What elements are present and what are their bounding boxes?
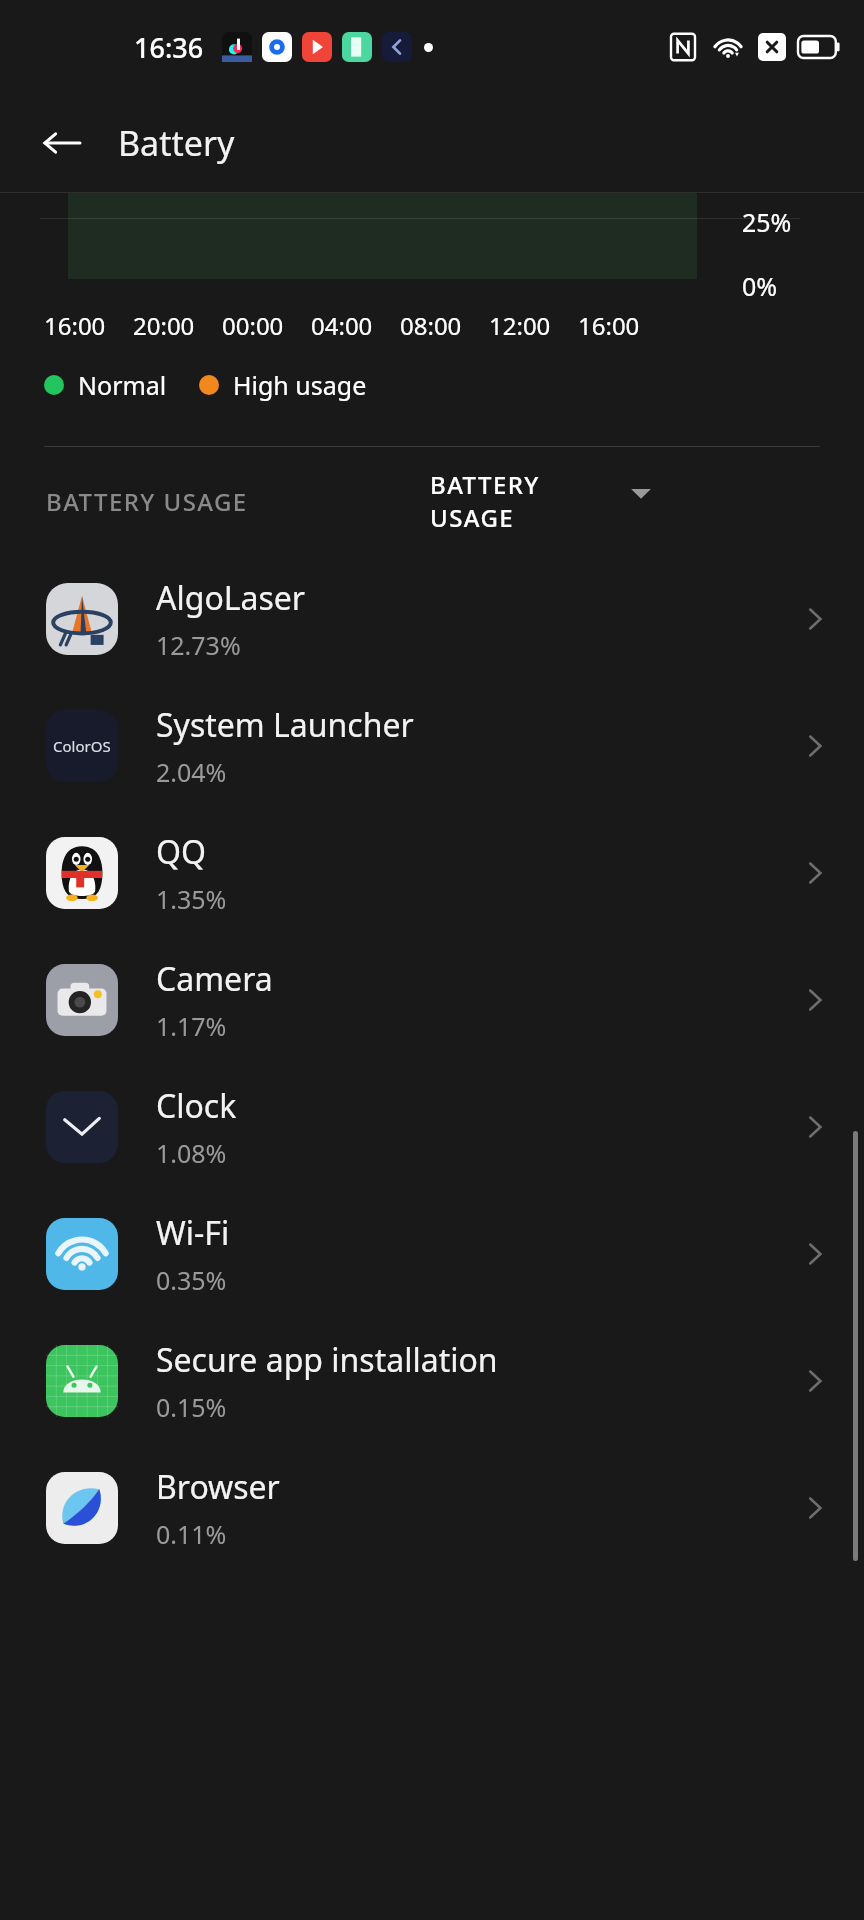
staticText: 20:00: [133, 309, 195, 342]
staticText: BATTERY USAGE: [46, 485, 248, 518]
staticText: 2.04%: [156, 755, 227, 789]
staticText: 12:00: [489, 309, 551, 342]
staticText: Normal: [78, 368, 167, 402]
staticText: 04:00: [311, 309, 373, 342]
button[interactable]: Secure app installation: [0, 1317, 864, 1444]
staticText: AlgoLaser: [156, 576, 306, 620]
staticText: Wi-Fi: [156, 1211, 230, 1255]
other: Sort: [628, 480, 654, 506]
staticText: Battery: [118, 120, 235, 166]
button[interactable]: AlgoLaser: [0, 555, 864, 682]
staticText: 00:00: [222, 309, 284, 342]
staticText: 0.35%: [156, 1263, 227, 1297]
staticText: 1.35%: [156, 882, 227, 916]
staticText: ColorOS: [53, 736, 111, 756]
staticText: QQ: [156, 830, 206, 874]
staticText: 25%: [742, 205, 792, 239]
staticText: Camera: [156, 957, 273, 1001]
staticText: 16:00: [578, 309, 640, 342]
staticText: System Launcher: [156, 703, 414, 747]
staticText: High usage: [233, 368, 367, 402]
staticText: Secure app installation: [156, 1338, 498, 1382]
staticText: 08:00: [400, 309, 462, 342]
button[interactable]: QQ: [0, 809, 864, 936]
staticText: 16:00: [44, 309, 106, 342]
staticText: BATTERY USAGE: [430, 468, 540, 534]
staticText: Browser: [156, 1465, 280, 1509]
staticText: 0.15%: [156, 1390, 227, 1424]
staticText: 1.17%: [156, 1009, 227, 1043]
staticText: 0%: [742, 269, 778, 303]
staticText: Clock: [156, 1084, 237, 1128]
staticText: 1.08%: [156, 1136, 227, 1170]
button[interactable]: Clock: [0, 1063, 864, 1190]
staticText: 12.73%: [156, 628, 241, 662]
button[interactable]: Camera: [0, 936, 864, 1063]
staticText: 0.11%: [156, 1517, 227, 1551]
button[interactable]: BATTERY USAGE: [430, 468, 690, 534]
button[interactable]: Wi-Fi: [0, 1190, 864, 1317]
button[interactable]: Browser: [0, 1444, 864, 1571]
staticText: 16:36: [134, 29, 204, 66]
button[interactable]: Back: [26, 107, 98, 179]
button[interactable]: ColorOS: [0, 682, 864, 809]
